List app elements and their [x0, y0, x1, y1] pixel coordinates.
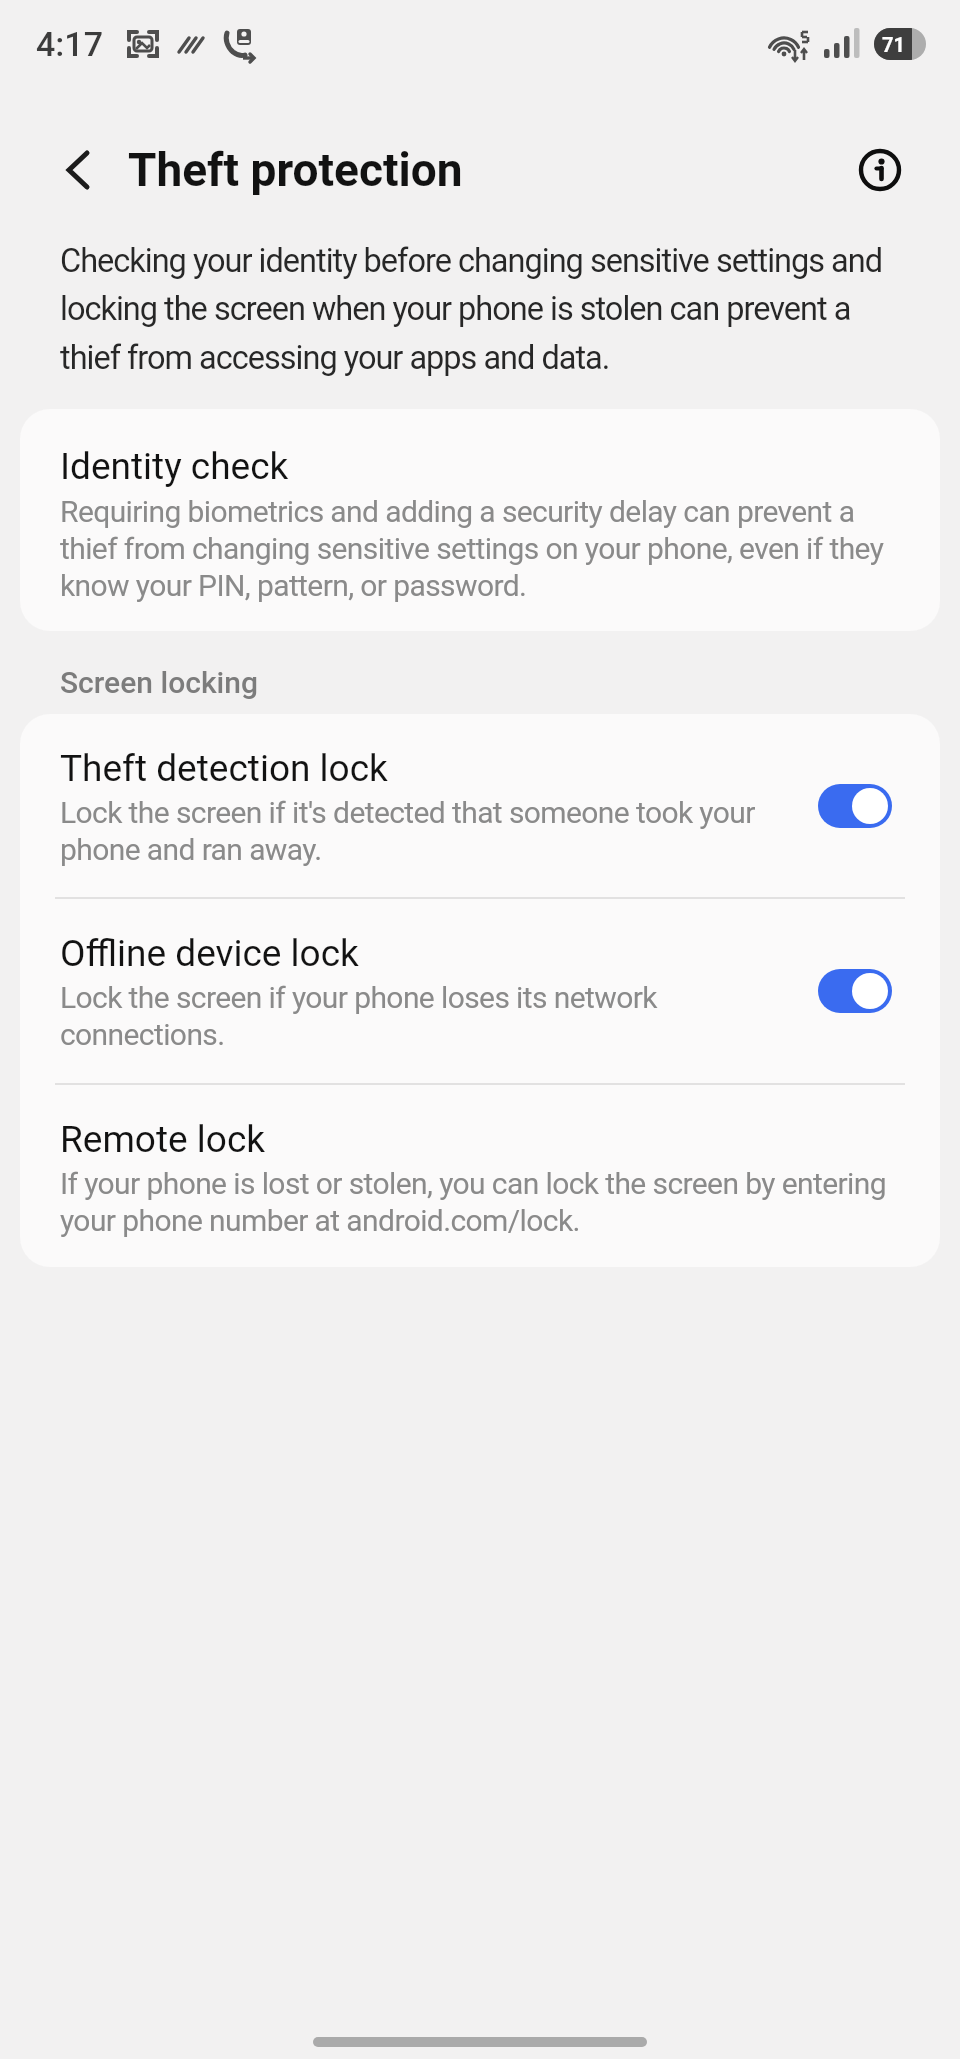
- staticText: Checking your identity before changing s…: [60, 242, 883, 377]
- staticText: Lock the screen if your phone loses its …: [60, 980, 657, 1053]
- button[interactable]: Remote lock: [20, 1085, 940, 1267]
- staticText: 71: [882, 33, 905, 56]
- button[interactable]: Offline device lock: [20, 899, 940, 1083]
- button[interactable]: [818, 784, 892, 828]
- staticText: Offline device lock: [60, 932, 359, 975]
- staticText: Requiring biometrics and adding a securi…: [60, 494, 884, 604]
- button[interactable]: [818, 969, 892, 1013]
- staticText: Theft detection lock: [60, 747, 388, 790]
- staticText: Remote lock: [60, 1118, 266, 1161]
- staticText: Lock the screen if it's detected that so…: [60, 795, 755, 868]
- staticText: Theft protection: [128, 143, 463, 197]
- staticText: If your phone is lost or stolen, you can…: [60, 1166, 886, 1239]
- staticText: 4:17: [36, 24, 103, 64]
- staticText: Identity check: [60, 445, 289, 488]
- button[interactable]: [52, 144, 104, 196]
- button[interactable]: [856, 146, 904, 194]
- button[interactable]: Theft detection lock: [20, 714, 940, 897]
- button[interactable]: Identity check: [20, 409, 940, 631]
- staticText: Screen locking: [60, 665, 258, 700]
